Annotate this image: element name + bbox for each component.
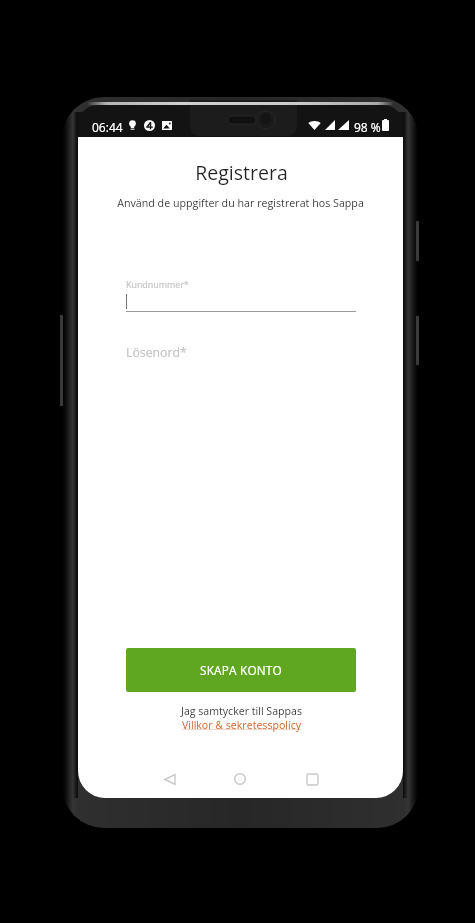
staticText: 98 % (354, 119, 381, 135)
staticText: Lösenord* (126, 344, 187, 361)
staticText: Kundnummer* (126, 278, 189, 290)
staticText: Registrera (79, 159, 403, 186)
staticText: Jag samtycker till Sappas (79, 704, 403, 718)
staticText: Använd de uppgifter du har registrerat h… (78, 196, 403, 211)
button[interactable]: Recents (299, 766, 325, 792)
staticText: 06:44 (92, 119, 123, 135)
button[interactable]: Villkor & sekretesspolicy (79, 718, 403, 732)
staticText: Villkor & sekretesspolicy (79, 718, 403, 732)
button[interactable]: Back (156, 766, 182, 792)
button[interactable]: Home (227, 766, 253, 792)
staticText: SKAPA KONTO (200, 662, 282, 678)
button[interactable]: SKAPA KONTO (126, 648, 356, 692)
